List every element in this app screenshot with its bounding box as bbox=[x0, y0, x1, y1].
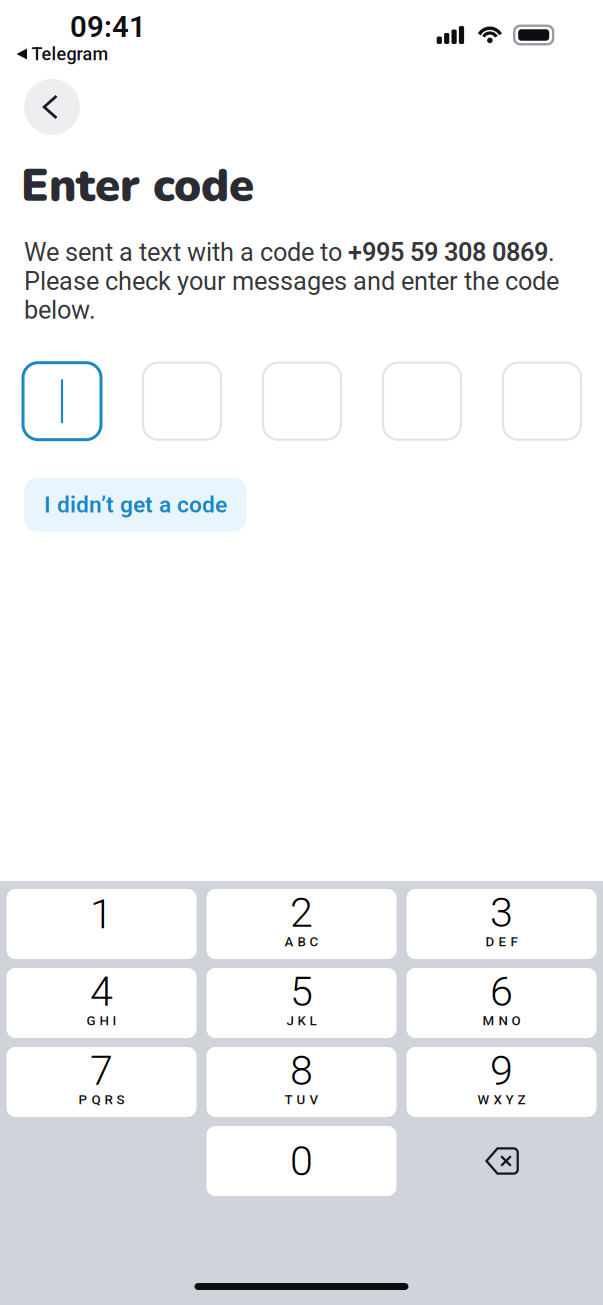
button[interactable]: 9 bbox=[406, 1047, 596, 1117]
staticText: W X Y Z bbox=[477, 1092, 525, 1107]
staticText: D E F bbox=[485, 934, 517, 949]
button[interactable]: Code digit bbox=[23, 363, 101, 440]
staticText: 7 bbox=[90, 1046, 113, 1095]
staticText: 1 bbox=[90, 890, 113, 938]
button[interactable]: Telegram bbox=[0, 46, 603, 66]
staticText: I didn’t get a code bbox=[44, 491, 227, 518]
button[interactable]: 8 bbox=[206, 1047, 396, 1117]
button[interactable]: 1 bbox=[6, 889, 196, 959]
button[interactable]: Delete bbox=[406, 1126, 596, 1196]
staticText: Telegram bbox=[31, 43, 108, 65]
staticText: 5 bbox=[290, 967, 313, 1016]
staticText: Enter code bbox=[21, 155, 254, 217]
button[interactable]: 3 bbox=[406, 889, 596, 959]
staticText: 4 bbox=[90, 967, 113, 1016]
button[interactable]: Code digit bbox=[503, 363, 581, 440]
button[interactable]: Back bbox=[24, 79, 80, 135]
staticText: 6 bbox=[490, 967, 513, 1016]
staticText: 3 bbox=[490, 888, 513, 937]
staticText: T U V bbox=[284, 1092, 318, 1107]
staticText: M N O bbox=[482, 1013, 520, 1028]
staticText: 8 bbox=[290, 1046, 313, 1095]
staticText: 09:41 bbox=[70, 10, 146, 44]
staticText: We sent a text with a code to +995 59 30… bbox=[24, 238, 559, 325]
staticText: 9 bbox=[490, 1046, 513, 1095]
staticText: P Q R S bbox=[78, 1092, 124, 1107]
button[interactable]: 2 bbox=[206, 889, 396, 959]
staticText: G H I bbox=[86, 1013, 116, 1028]
button[interactable]: 5 bbox=[206, 968, 396, 1038]
button[interactable]: 7 bbox=[6, 1047, 196, 1117]
button[interactable]: 0 bbox=[206, 1126, 396, 1196]
button[interactable]: Code digit bbox=[383, 363, 461, 440]
button[interactable]: 6 bbox=[406, 968, 596, 1038]
staticText: A B C bbox=[284, 934, 318, 949]
staticText: J K L bbox=[286, 1013, 316, 1028]
staticText: 2 bbox=[290, 888, 313, 937]
button[interactable]: Code digit bbox=[263, 363, 341, 440]
button[interactable]: Code digit bbox=[143, 363, 221, 440]
button[interactable]: 4 bbox=[6, 968, 196, 1038]
staticText: 0 bbox=[290, 1137, 313, 1185]
button[interactable]: I didn’t get a code bbox=[24, 478, 247, 532]
